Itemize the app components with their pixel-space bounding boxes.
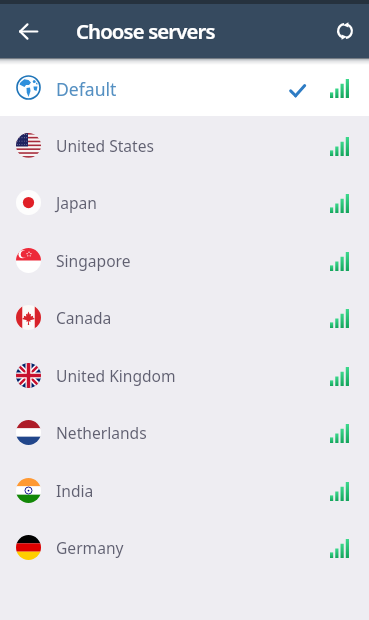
staticText: Germany <box>56 537 124 558</box>
staticText: United States <box>56 135 154 156</box>
staticText: Japan <box>56 192 97 213</box>
button[interactable]: Canada <box>0 288 369 346</box>
staticText: Singapore <box>56 250 131 271</box>
staticText: India <box>56 480 94 501</box>
staticText: Netherlands <box>56 422 147 443</box>
staticText: Default <box>56 77 117 101</box>
staticText: United Kingdom <box>56 365 176 386</box>
button[interactable]: Japan <box>0 173 369 231</box>
staticText: Choose servers <box>76 17 215 45</box>
button[interactable]: United States <box>0 116 369 174</box>
staticText: Canada <box>56 307 112 328</box>
button[interactable]: Refresh <box>321 4 369 58</box>
button[interactable]: Back <box>0 4 57 58</box>
button[interactable]: Netherlands <box>0 403 369 461</box>
button[interactable]: United Kingdom <box>0 346 369 404</box>
button[interactable]: India <box>0 461 369 519</box>
button[interactable]: Germany <box>0 518 369 576</box>
button[interactable]: Singapore <box>0 231 369 289</box>
button[interactable]: Default <box>0 58 369 116</box>
